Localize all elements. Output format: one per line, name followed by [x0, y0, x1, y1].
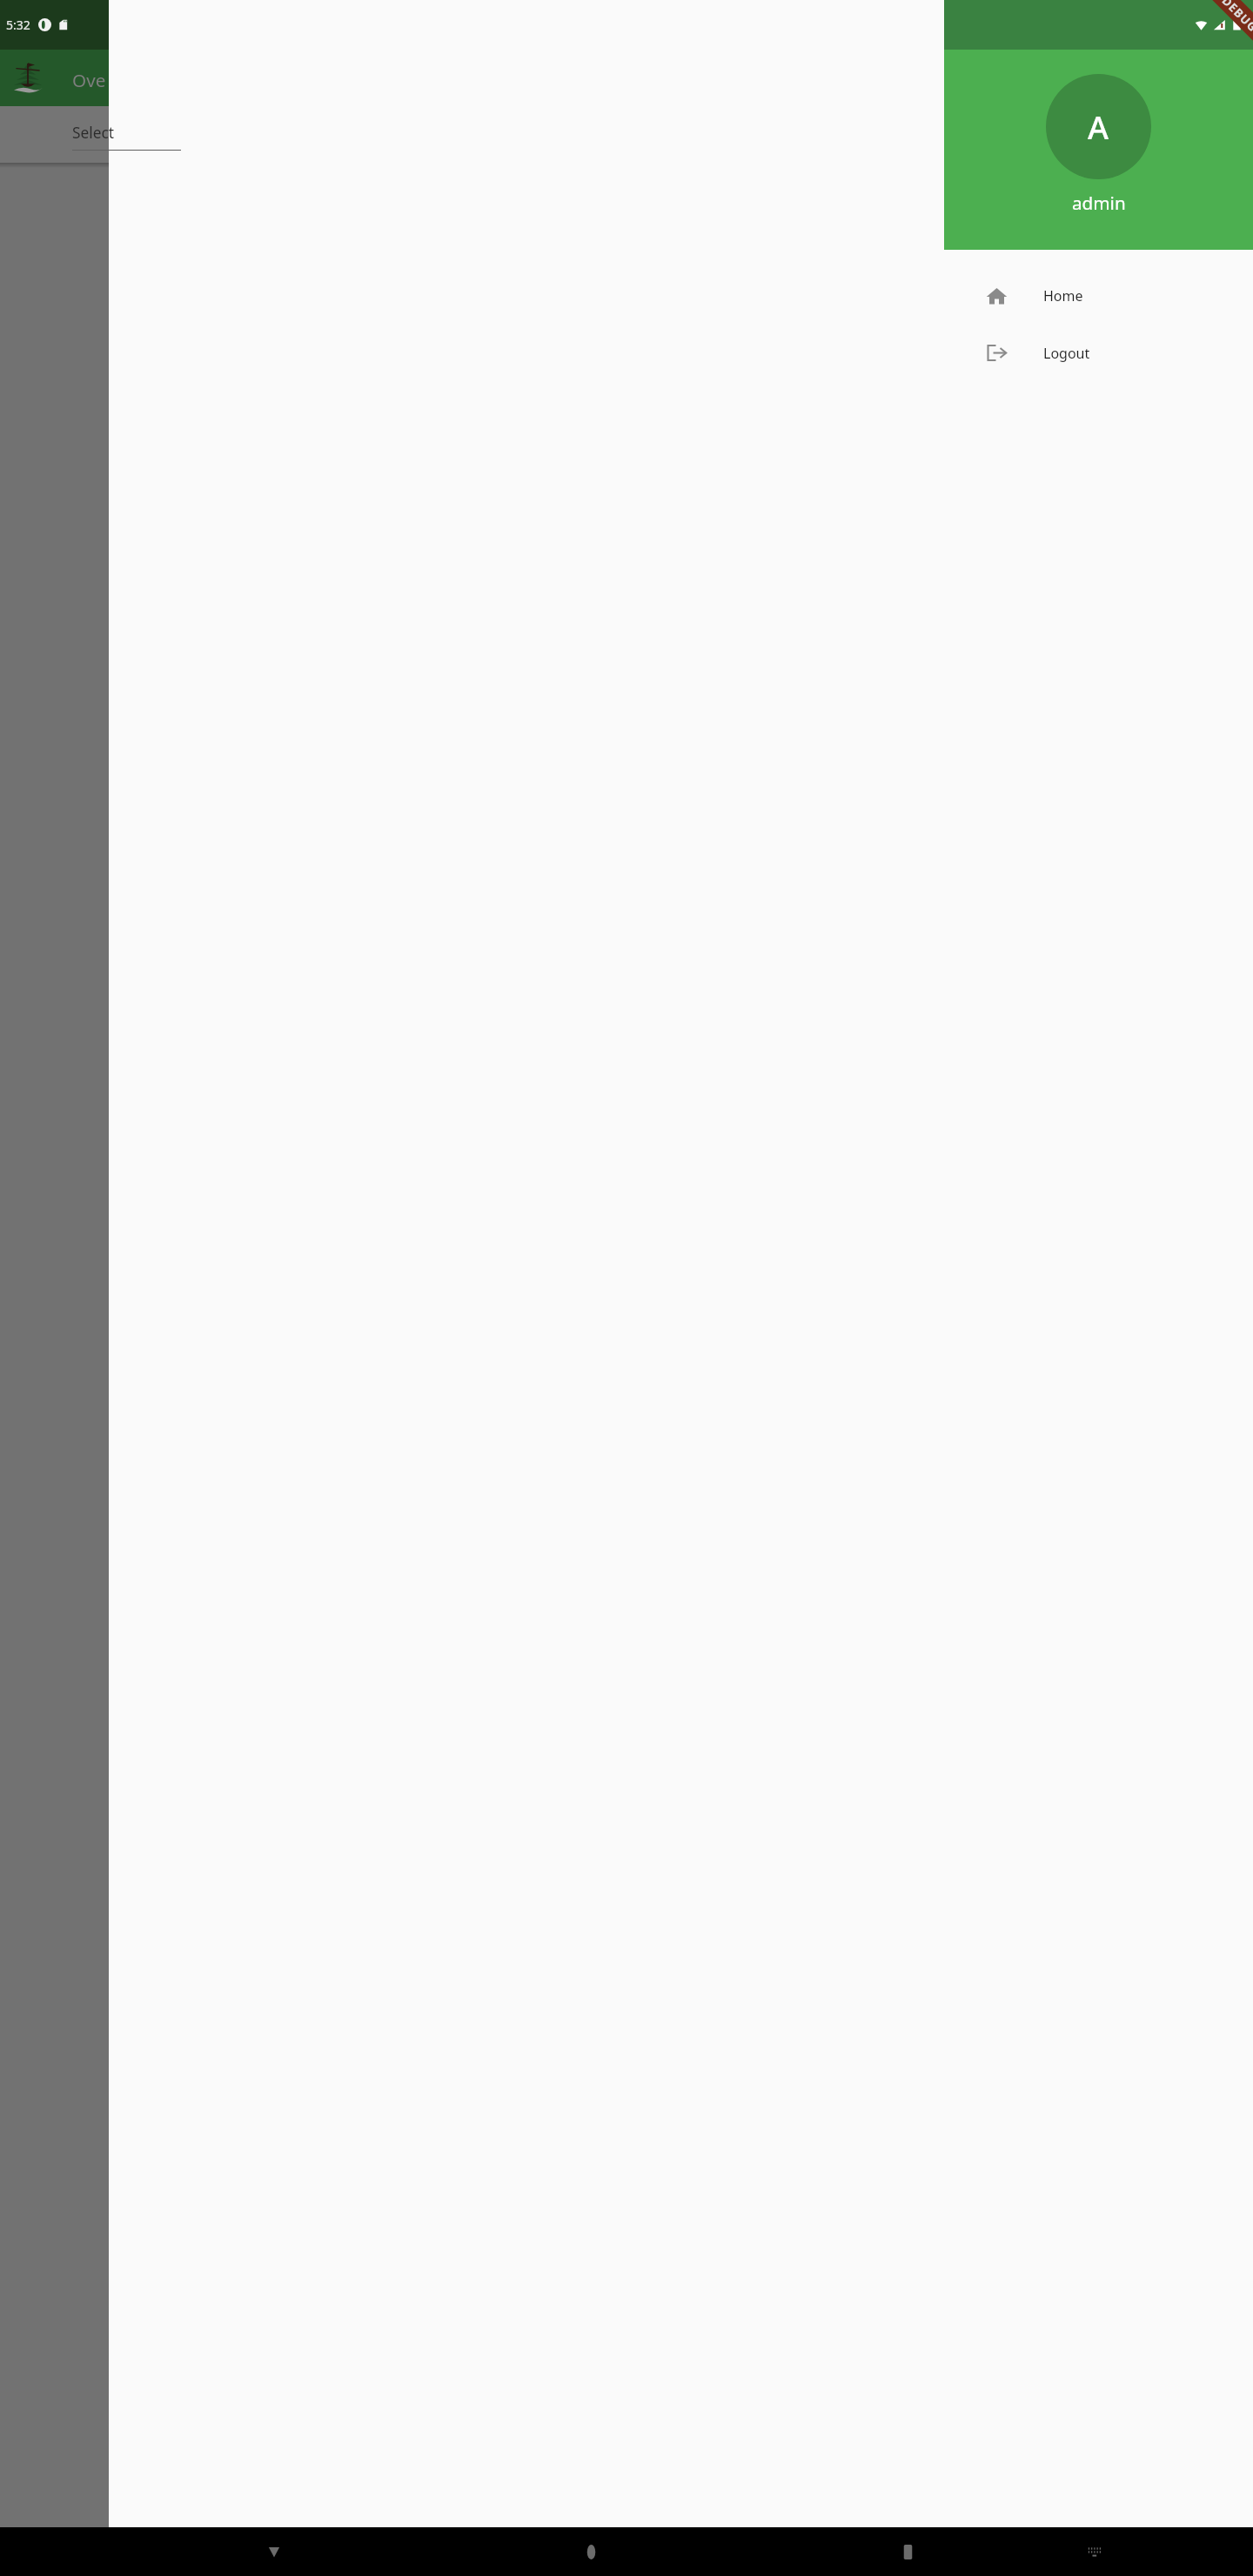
staticText: Home — [1043, 286, 1083, 305]
button[interactable]: Home — [944, 284, 1253, 307]
button[interactable]: Back — [260, 2538, 288, 2566]
button[interactable]: Recent apps — [894, 2538, 921, 2566]
button[interactable]: Home — [577, 2538, 605, 2566]
staticText: A — [1088, 105, 1109, 149]
button[interactable]: Switch keyboard — [1081, 2538, 1109, 2566]
staticText: admin — [1072, 191, 1126, 215]
staticText: Logout — [1043, 344, 1090, 363]
staticText: Select — [72, 122, 115, 143]
staticText: 5:32 — [6, 17, 30, 33]
staticText: DEBUG — [1219, 0, 1253, 35]
staticText: Ove — [72, 68, 106, 92]
button[interactable]: Logout — [944, 341, 1253, 365]
